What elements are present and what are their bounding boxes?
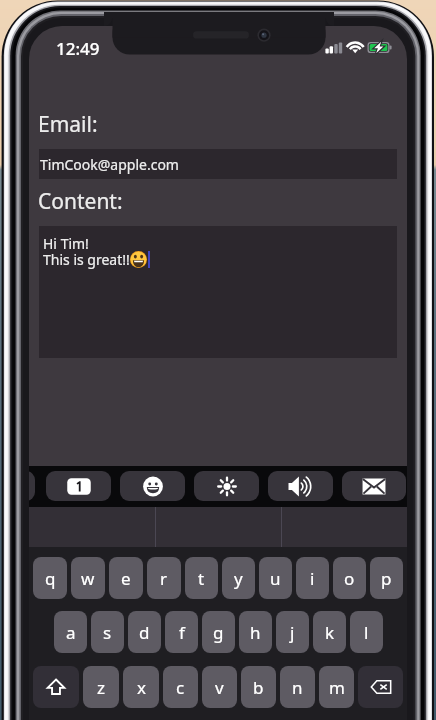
button[interactable]: v (202, 666, 237, 708)
staticText: e (121, 567, 131, 590)
staticText: v (215, 676, 224, 699)
staticText: j (290, 621, 295, 644)
button[interactable]: d (128, 611, 161, 653)
button[interactable]: Sound (268, 471, 333, 501)
button[interactable]: q (33, 557, 67, 599)
button[interactable]: Hi Tim! (39, 226, 397, 358)
button[interactable]: m (319, 666, 354, 708)
button[interactable]: u (259, 557, 292, 599)
staticText: y (234, 567, 243, 590)
button[interactable]: y (222, 557, 255, 599)
button[interactable]: Brightness (194, 471, 259, 501)
button[interactable]: t (185, 557, 218, 599)
button[interactable]: h (239, 611, 272, 653)
button[interactable]: f (165, 611, 198, 653)
staticText: l (364, 621, 369, 644)
staticText: w (81, 567, 95, 590)
staticText: n (292, 676, 303, 699)
button[interactable]: Backspace (358, 666, 403, 708)
button[interactable]: Emoji (120, 471, 185, 501)
button[interactable]: j (276, 611, 309, 653)
staticText: r (160, 567, 168, 590)
button[interactable]: k (313, 611, 346, 653)
staticText: s (103, 621, 112, 644)
button[interactable]: b (241, 666, 276, 708)
button[interactable]: Email (342, 471, 406, 501)
button[interactable]: Keyboard layout (46, 471, 111, 501)
button[interactable]: Shift (33, 666, 79, 708)
staticText: m (329, 676, 345, 699)
staticText: i (310, 567, 315, 590)
button[interactable]: w (71, 557, 105, 599)
staticText: f (179, 621, 185, 644)
staticText: 12:49 (56, 37, 100, 57)
button[interactable]: c (163, 666, 198, 708)
button[interactable]: s (91, 611, 124, 653)
staticText: b (253, 676, 264, 699)
staticText: o (344, 567, 355, 590)
staticText: TimCook@apple.com (40, 155, 179, 174)
button[interactable]: z (83, 666, 119, 708)
staticText: g (213, 621, 224, 644)
button[interactable]: Previous tools (29, 471, 35, 501)
staticText: x (137, 676, 146, 699)
button[interactable]: x (123, 666, 159, 708)
staticText: q (45, 567, 56, 590)
staticText: Hi Tim! (43, 234, 89, 253)
staticText: u (270, 567, 281, 590)
button[interactable]: o (333, 557, 366, 599)
staticText: c (176, 676, 185, 699)
button[interactable]: r (147, 557, 181, 599)
button[interactable]: p (370, 557, 403, 599)
staticText: h (250, 621, 261, 644)
button[interactable]: l (350, 611, 383, 653)
button[interactable]: e (109, 557, 143, 599)
staticText: Email: (38, 110, 98, 139)
staticText: k (325, 621, 335, 644)
staticText: t (198, 567, 205, 590)
staticText: Content: (38, 187, 123, 216)
button[interactable]: g (202, 611, 235, 653)
staticText: d (139, 621, 150, 644)
staticText: a (66, 621, 76, 644)
staticText: z (97, 676, 105, 699)
button[interactable]: i (296, 557, 329, 599)
staticText: This is great!! (43, 250, 130, 269)
button[interactable]: a (54, 611, 87, 653)
staticText: p (381, 567, 392, 590)
button[interactable]: n (280, 666, 315, 708)
button[interactable]: TimCook@apple.com (39, 149, 397, 179)
